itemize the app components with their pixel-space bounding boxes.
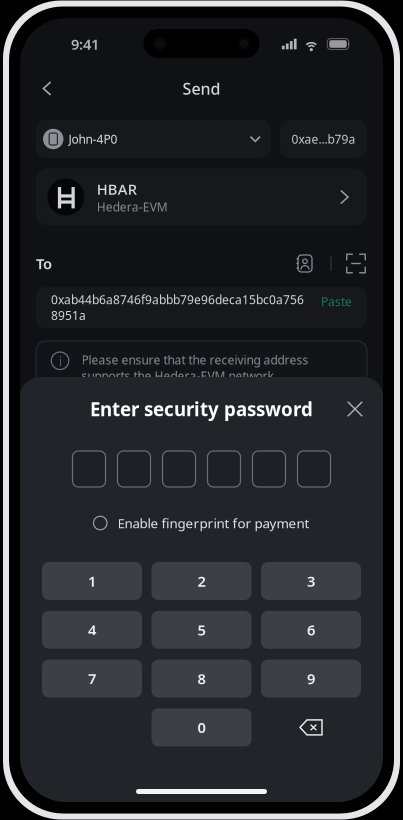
button[interactable]: 6 <box>261 611 361 649</box>
button[interactable]: 0xae...b79a <box>280 120 367 158</box>
staticText: 5 <box>197 620 205 640</box>
staticText: 7 <box>88 669 96 688</box>
staticText: Enter security password <box>90 397 313 421</box>
button[interactable]: HBAR <box>36 168 367 225</box>
staticText: 8 <box>197 669 205 688</box>
button[interactable]: Close <box>341 395 369 423</box>
button[interactable]: Paste <box>321 292 352 309</box>
button[interactable]: 7 <box>42 660 142 698</box>
staticText: 0xae...b79a <box>291 131 355 147</box>
button[interactable]: Contacts <box>294 252 316 274</box>
button[interactable]: Scan QR code <box>346 252 366 274</box>
button[interactable]: 2 <box>151 562 251 600</box>
button[interactable]: Back <box>33 73 61 103</box>
staticText: Hedera-EVM <box>97 199 168 215</box>
staticText: 1 <box>88 571 96 591</box>
button[interactable]: 1 <box>42 562 142 600</box>
staticText: 6 <box>307 620 315 640</box>
button[interactable]: 9 <box>261 660 361 698</box>
staticText: i <box>58 352 61 370</box>
staticText: Paste <box>321 294 352 309</box>
staticText: Enable fingerprint for payment <box>117 514 309 532</box>
staticText: 0xab44b6a8746f9abbb79e96deca15bc0a756895… <box>51 292 304 323</box>
staticText: 2 <box>197 571 205 591</box>
staticText: John-4P0 <box>68 131 117 147</box>
button[interactable]: 0 <box>151 708 251 746</box>
button[interactable]: John-4P0 <box>36 120 271 158</box>
button[interactable]: Enable fingerprint for payment <box>93 512 309 534</box>
staticText: HBAR <box>97 179 137 199</box>
staticText: Please ensure that the receiving address… <box>81 352 308 384</box>
staticText: Send <box>182 78 220 99</box>
button[interactable]: 3 <box>261 562 361 600</box>
staticText: 9 <box>307 669 315 688</box>
button[interactable]: Delete <box>261 708 361 746</box>
button[interactable]: 4 <box>42 611 142 649</box>
button[interactable]: 5 <box>151 611 251 649</box>
staticText: 9:41 <box>71 34 99 54</box>
staticText: 3 <box>307 571 315 591</box>
staticText: 0 <box>197 718 205 737</box>
button[interactable]: 8 <box>151 660 251 698</box>
staticText: 4 <box>88 620 96 640</box>
staticText: To <box>36 254 52 273</box>
